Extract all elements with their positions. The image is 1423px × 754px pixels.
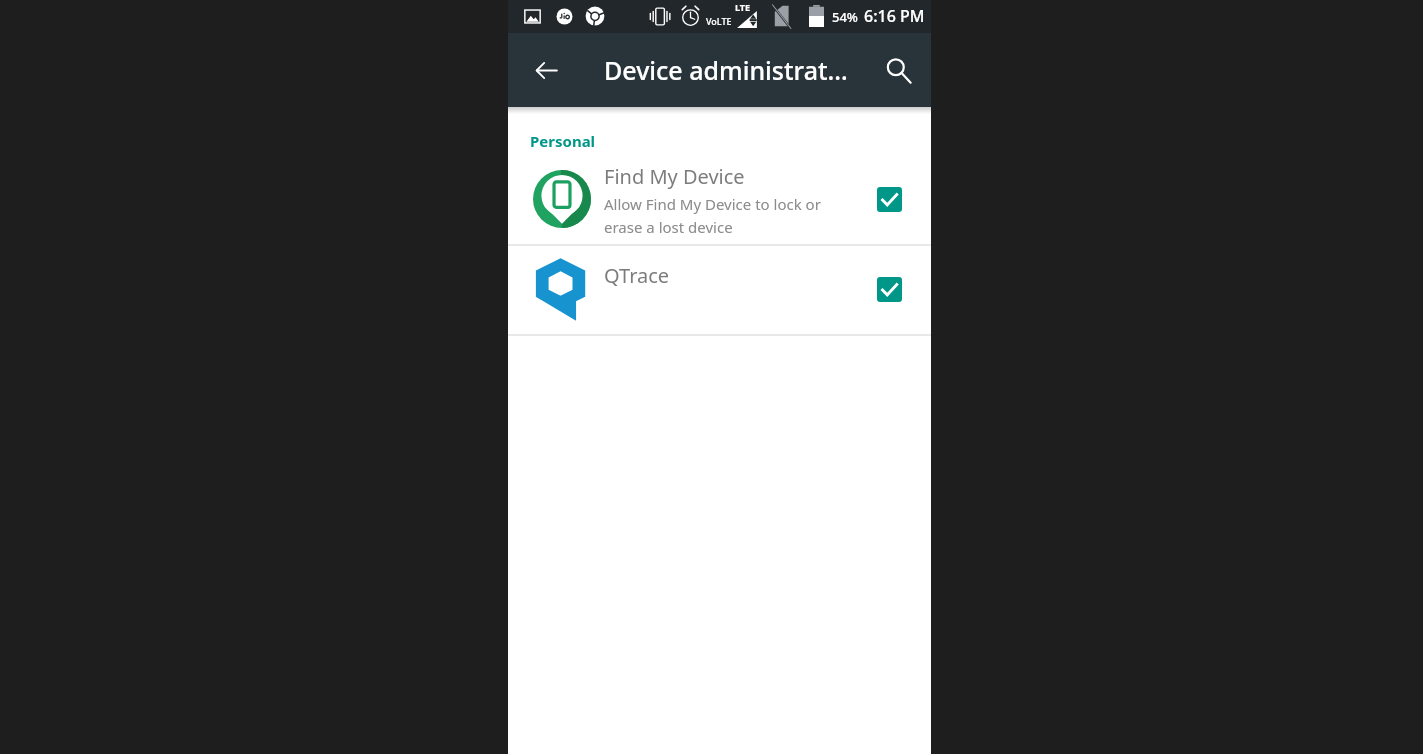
button[interactable]: Search — [878, 50, 918, 90]
staticText: Allow Find My Device to lock or erase a … — [604, 194, 821, 237]
staticText: QTrace — [604, 262, 670, 289]
staticText: Device administrat… — [604, 53, 848, 87]
button[interactable]: QTrace — [508, 245, 931, 334]
staticText: Personal — [530, 131, 596, 151]
staticText: Find My Device — [604, 163, 745, 190]
button[interactable]: Back — [525, 49, 567, 91]
staticText: 54% — [832, 8, 858, 26]
staticText: LTE — [735, 1, 751, 13]
button[interactable]: Find My Device — [508, 155, 931, 244]
button[interactable]: QTrace enabled — [867, 267, 912, 312]
staticText: 6:16 PM — [864, 5, 925, 27]
button[interactable]: Find My Device enabled — [867, 177, 912, 222]
staticText: VoLTE — [706, 15, 732, 27]
